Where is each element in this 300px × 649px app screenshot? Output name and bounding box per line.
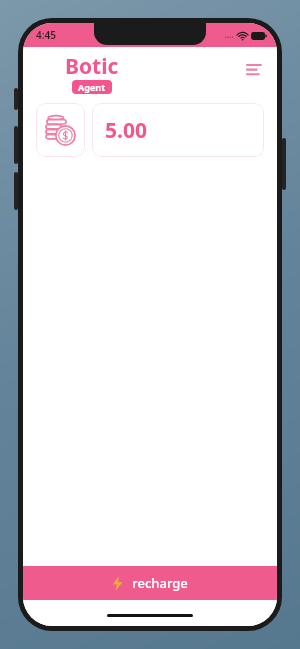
button[interactable]: recharge xyxy=(23,566,277,600)
staticText: 4:45 xyxy=(36,28,56,42)
button[interactable]: Menu xyxy=(239,55,269,85)
staticText: Agent xyxy=(78,81,106,93)
staticText: Botic xyxy=(65,52,119,81)
staticText: 5.00 xyxy=(105,116,147,145)
button[interactable]: 5.00 xyxy=(92,103,264,157)
button[interactable]: Coins balance xyxy=(36,103,85,157)
staticText: recharge xyxy=(132,574,188,592)
